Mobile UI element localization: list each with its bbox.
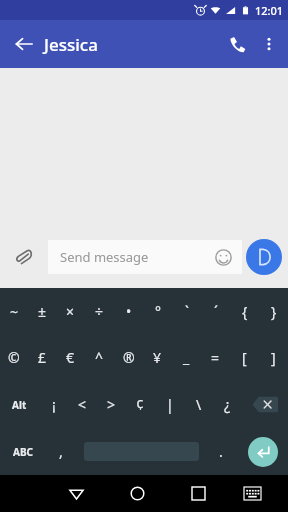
staticText: , [59,442,63,461]
staticText: _ [183,348,190,367]
button[interactable]: Alt [0,381,39,428]
button[interactable]: × [56,288,85,334]
staticText: ` [185,302,189,321]
staticText: } [271,302,277,321]
button[interactable]: Backspace [242,381,288,428]
button[interactable]: ° [143,288,172,334]
button[interactable]: ^ [85,334,114,381]
button[interactable]: © [0,334,28,381]
staticText: < [78,395,87,414]
staticText: • [126,302,132,321]
button[interactable]: ± [28,288,56,334]
staticText: ~ [10,302,19,321]
button[interactable]: Switch keyboard [229,475,276,512]
staticText: ¥ [153,348,162,367]
button[interactable]: [ [230,334,259,381]
button[interactable]: ¿ [213,381,242,428]
staticText: ± [38,302,47,321]
button[interactable]: Enter [237,428,288,475]
staticText: 12:01 [255,3,284,18]
staticText: . [219,442,223,461]
button[interactable]: Send message [48,240,242,274]
staticText: > [107,395,116,414]
button[interactable]: , [45,428,77,475]
button[interactable]: | [155,381,184,428]
button[interactable]: ¡ [39,381,68,428]
button[interactable]: } [259,288,288,334]
button[interactable]: { [230,288,259,334]
staticText: \ [196,395,202,414]
button[interactable]: ~ [0,288,28,334]
button[interactable]: ] [259,334,288,381]
button[interactable]: Attach [6,240,40,274]
staticText: € [66,348,75,367]
staticText: ¡ [52,395,56,414]
button[interactable]: More options [254,29,284,59]
button[interactable]: £ [28,334,56,381]
button[interactable]: Space [77,428,205,475]
button[interactable]: . [205,428,237,475]
button[interactable]: Home [107,475,168,512]
button[interactable]: Recent apps [168,475,229,512]
button[interactable]: Back [8,28,40,60]
staticText: ° [155,302,161,321]
button[interactable]: _ [172,334,201,381]
staticText: ¿ [224,395,231,414]
button[interactable]: ABC [0,428,45,475]
button[interactable]: > [97,381,126,428]
button[interactable]: = [201,334,230,381]
staticText: [ [242,348,247,367]
button[interactable]: ÷ [85,288,114,334]
staticText: | [166,395,174,414]
staticText: ® [123,348,135,367]
staticText: ABC [13,445,33,459]
staticText: Send message [60,248,210,266]
button[interactable]: Back [46,475,107,512]
staticText: × [66,302,75,321]
staticText: = [211,348,220,367]
staticText: Alt [12,398,27,412]
button[interactable]: • [114,288,143,334]
button[interactable]: Send [246,239,282,275]
staticText: ´ [214,302,218,321]
staticText: ] [271,348,276,367]
staticText: { [242,302,248,321]
button[interactable]: ¥ [143,334,172,381]
button[interactable]: \ [184,381,213,428]
button[interactable]: Call [220,27,254,61]
button[interactable]: < [68,381,97,428]
button[interactable]: ® [114,334,143,381]
button[interactable]: ¢ [126,381,155,428]
button[interactable]: Insert emoji [210,244,236,270]
staticText: ¢ [136,395,145,414]
staticText: Jessica [44,33,98,56]
button[interactable]: ` [172,288,201,334]
staticText: ÷ [95,302,104,321]
button[interactable]: € [56,334,85,381]
button[interactable]: ´ [201,288,230,334]
staticText: £ [38,348,47,367]
staticText: ^ [95,348,104,367]
staticText: © [8,348,20,367]
